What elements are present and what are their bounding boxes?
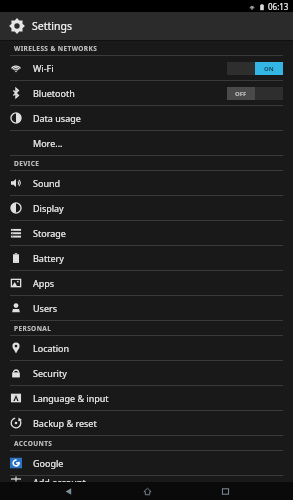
staticText: PERSONAL (14, 324, 52, 333)
button[interactable]: Bluetooth off (227, 87, 283, 100)
button[interactable]: Add account (0, 476, 293, 482)
staticText: Security (33, 367, 67, 379)
staticText: Apps (33, 277, 55, 289)
staticText: Users (33, 302, 57, 314)
staticText: Location (33, 342, 70, 354)
button[interactable]: Home (136, 482, 158, 500)
button[interactable]: Users (0, 296, 293, 320)
staticText: Battery (33, 252, 64, 264)
staticText: Storage (33, 227, 66, 239)
staticText: Bluetooth (33, 87, 75, 99)
staticText: DEVICE (14, 159, 40, 168)
button[interactable]: Sound (0, 171, 293, 195)
staticText: 06:13 (268, 1, 289, 12)
staticText: OFF (235, 90, 247, 98)
staticText: ON (264, 65, 274, 73)
button[interactable]: Apps (0, 271, 293, 295)
button[interactable]: Language & input (0, 386, 293, 410)
button[interactable]: Google (0, 451, 293, 475)
staticText: Data usage (33, 112, 81, 124)
button[interactable]: More... (0, 131, 293, 155)
staticText: Language & input (33, 392, 109, 404)
button[interactable]: Display (0, 196, 293, 220)
button[interactable]: Data usage (0, 106, 293, 130)
button[interactable]: Security (0, 361, 293, 385)
button[interactable]: Back (57, 482, 79, 500)
button[interactable]: Backup & reset (0, 411, 293, 435)
staticText: WIRELESS & NETWORKS (14, 44, 98, 53)
staticText: Backup & reset (33, 417, 97, 429)
button[interactable]: Wi-Fi on (227, 62, 283, 75)
button[interactable]: Bluetooth (0, 81, 293, 105)
staticText: Display (33, 202, 64, 214)
button[interactable]: Wi-Fi (0, 56, 293, 80)
staticText: Sound (33, 177, 61, 189)
staticText: Wi-Fi (33, 62, 54, 74)
button[interactable]: Location (0, 336, 293, 360)
staticText: Google (33, 457, 64, 469)
button[interactable]: Storage (0, 221, 293, 245)
staticText: Add account (33, 476, 86, 482)
staticText: ACCOUNTS (14, 439, 53, 448)
staticText: More... (33, 137, 63, 149)
button[interactable]: Settings (0, 12, 293, 40)
button[interactable]: Battery (0, 246, 293, 270)
staticText: Settings (32, 19, 72, 33)
button[interactable]: Recent apps (214, 482, 236, 500)
